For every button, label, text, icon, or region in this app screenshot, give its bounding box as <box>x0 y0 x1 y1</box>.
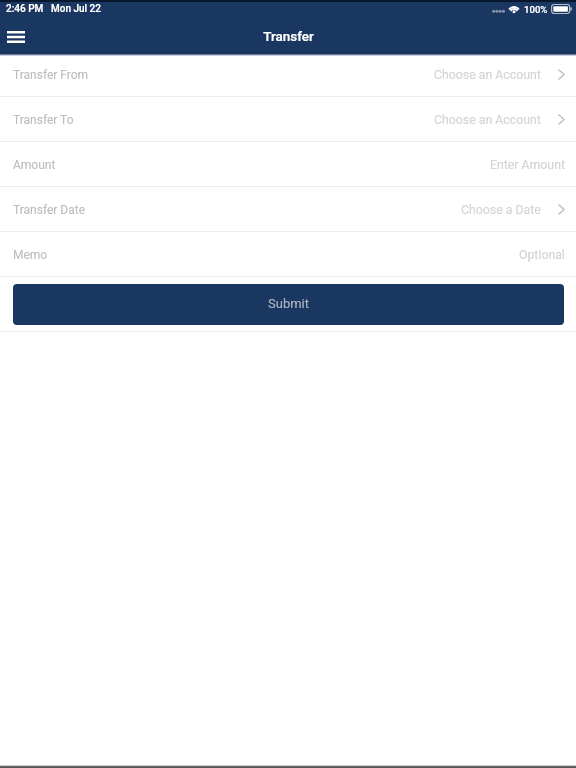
staticText: Transfer From <box>13 68 89 82</box>
staticText: Submit <box>268 296 309 311</box>
staticText: Choose an Account <box>434 68 541 82</box>
staticText: Memo <box>13 248 48 262</box>
staticText: Optional <box>519 248 565 262</box>
staticText: Mon Jul 22 <box>51 3 101 15</box>
staticText: Choose an Account <box>434 113 541 127</box>
staticText: Transfer Date <box>13 203 86 217</box>
staticText: Enter Amount <box>490 158 565 172</box>
button[interactable]: Memo <box>0 232 576 276</box>
staticText: Transfer To <box>13 113 74 127</box>
button[interactable]: Amount <box>0 142 576 186</box>
staticText: 2:46 PM <box>6 3 44 15</box>
staticText: Choose a Date <box>461 203 541 217</box>
staticText: Amount <box>13 158 56 172</box>
button[interactable]: Transfer Date <box>0 187 576 231</box>
button[interactable]: Transfer To <box>0 97 576 141</box>
staticText: 100% <box>524 4 548 15</box>
button[interactable]: Open navigation menu <box>2 23 29 50</box>
staticText: Transfer <box>263 28 314 44</box>
button[interactable]: Submit <box>13 284 564 325</box>
button[interactable]: Transfer From <box>0 52 576 96</box>
